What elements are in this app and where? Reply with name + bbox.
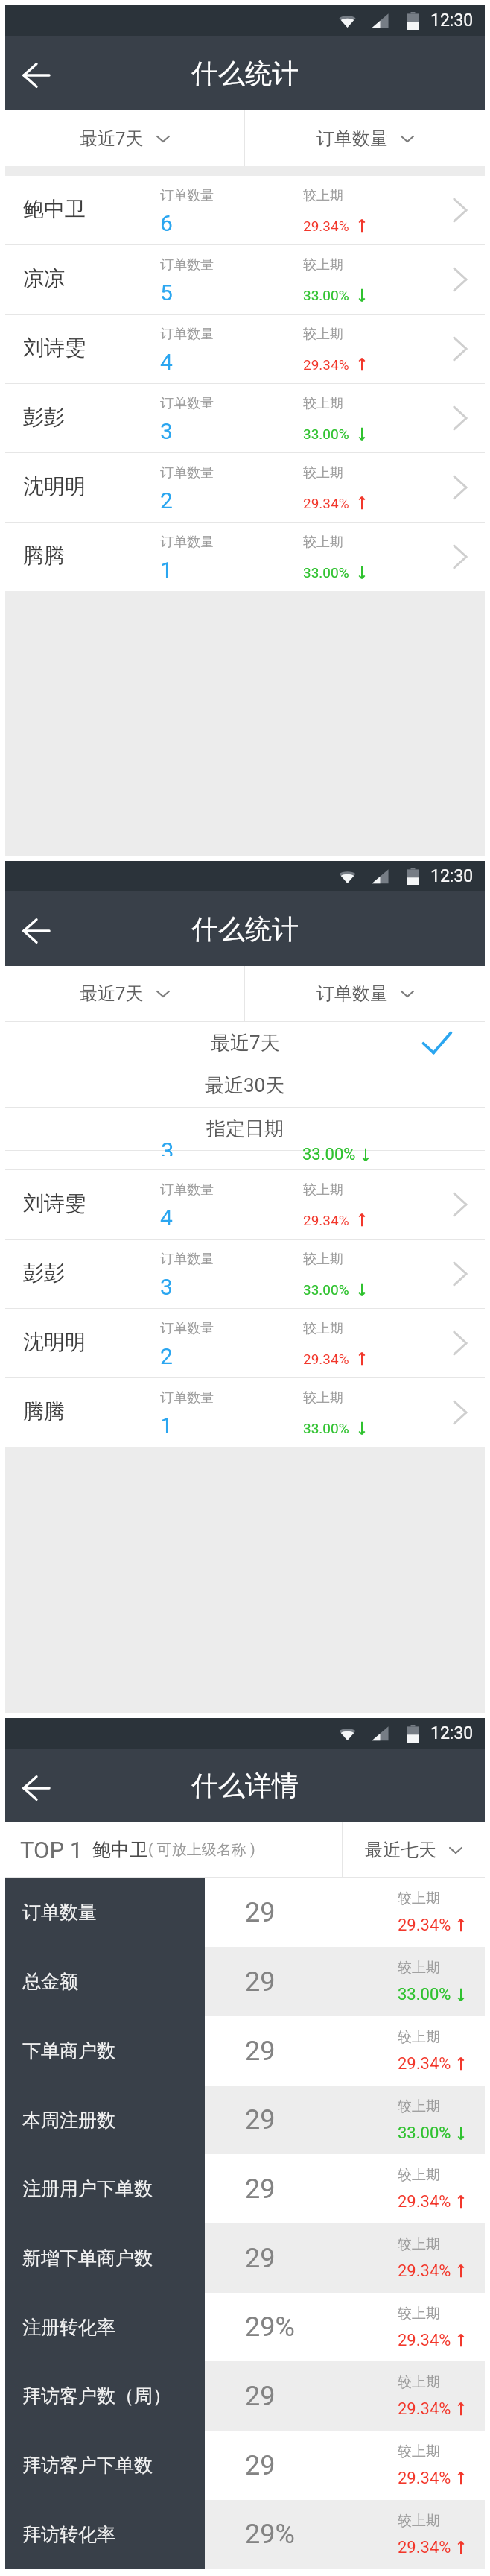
button[interactable]: 刘诗雯 (5, 1170, 485, 1239)
staticText: 12:30 (430, 866, 474, 886)
staticText: 33.00% (398, 1985, 451, 2004)
staticText: 较上期 (303, 256, 343, 274)
staticText: 较上期 (398, 2443, 440, 2460)
staticText: 12:30 (430, 1723, 474, 1743)
staticText: 29 (245, 2243, 276, 2274)
staticText: 33.00% (303, 287, 349, 303)
button[interactable]: 最近7天 (5, 1022, 485, 1064)
button[interactable]: 刘诗雯 (5, 315, 485, 383)
button[interactable]: 下单商户数 (5, 2016, 485, 2086)
button[interactable]: Back (22, 918, 51, 944)
staticText: 29.34% (398, 2261, 451, 2281)
button[interactable]: 指定日期 (5, 1108, 485, 1150)
staticText: 较上期 (303, 1389, 343, 1407)
button[interactable]: 订单数量 (5, 1878, 485, 1947)
staticText: 腾腾 (23, 1398, 65, 1424)
staticText: 29% (245, 2519, 295, 2550)
staticText: 29.34% (303, 495, 349, 511)
staticText: 3 (160, 418, 173, 444)
button[interactable]: 鲍中卫 (5, 176, 485, 244)
button[interactable]: 最近7天 (5, 966, 244, 1021)
staticText: 较上期 (303, 1181, 343, 1199)
button[interactable]: Back (22, 63, 51, 88)
button[interactable]: 拜访转化率 (5, 2500, 485, 2569)
staticText: 鲍中卫 (92, 1838, 148, 1861)
button[interactable]: 注册用户下单数 (5, 2154, 485, 2223)
button[interactable]: 最近7天 (5, 110, 244, 166)
button[interactable]: 凉凉 (5, 245, 485, 314)
staticText: 注册转化率 (22, 2316, 115, 2339)
button[interactable]: 新增下单商户数 (5, 2223, 485, 2293)
staticText: 彭彭 (23, 1260, 65, 1286)
staticText: 订单数量 (160, 1389, 214, 1407)
staticText: 最近7天 (80, 127, 144, 150)
staticText: 29.34% (398, 2399, 451, 2419)
staticText: 较上期 (398, 2166, 440, 2184)
staticText: 29.34% (303, 218, 349, 234)
staticText: 总金额 (22, 1970, 78, 1993)
staticText: 29.34% (303, 1212, 349, 1228)
staticText: 最近7天 (80, 982, 144, 1005)
staticText: 最近七天 (365, 1839, 436, 1861)
staticText: 6 (160, 210, 173, 236)
staticText: 较上期 (398, 2235, 440, 2253)
staticText: 拜访客户下单数 (22, 2454, 153, 2477)
staticText: 下单商户数 (22, 2039, 115, 2062)
staticText: 较上期 (398, 1890, 440, 1907)
staticText: 33.00% (398, 2124, 451, 2143)
button[interactable]: 彭彭 (5, 384, 485, 452)
staticText: 什么详情 (191, 1769, 299, 1802)
staticText: 较上期 (303, 395, 343, 412)
staticText: 什么统计 (191, 57, 299, 90)
staticText: 凉凉 (23, 265, 65, 291)
staticText: 4 (160, 1205, 173, 1231)
button[interactable]: 沈明明 (5, 453, 485, 522)
staticText: 29.34% (398, 2054, 451, 2074)
staticText: 较上期 (398, 2028, 440, 2046)
button[interactable]: 腾腾 (5, 1378, 485, 1447)
staticText: 订单数量 (160, 326, 214, 343)
button[interactable]: 注册转化率 (5, 2293, 485, 2361)
staticText: 29.34% (398, 2538, 451, 2557)
button[interactable]: 订单数量 (245, 966, 485, 1021)
button[interactable]: 订单数量 (245, 110, 485, 166)
staticText: 订单数量 (160, 1251, 214, 1268)
button[interactable]: 最近七天 (343, 1822, 485, 1877)
staticText: 什么统计 (191, 912, 299, 946)
button[interactable]: 最近30天 (5, 1064, 485, 1107)
staticText: 29 (245, 2450, 276, 2481)
staticText: 较上期 (303, 326, 343, 343)
staticText: 订单数量 (316, 127, 388, 150)
staticText: 较上期 (303, 464, 343, 482)
staticText: 订单数量 (316, 982, 388, 1005)
staticText: 29 (245, 1897, 276, 1928)
staticText: 29.34% (303, 1351, 349, 1367)
staticText: 29% (245, 2311, 295, 2343)
staticText: 订单数量 (160, 1181, 214, 1199)
staticText: 鲍中卫 (23, 196, 86, 222)
staticText: 29 (245, 2173, 276, 2205)
button[interactable]: Back (22, 1775, 51, 1801)
staticText: 3 (160, 1274, 173, 1300)
staticText: 29 (245, 2381, 276, 2412)
button[interactable]: 彭彭 (5, 1240, 485, 1308)
staticText: 腾腾 (23, 543, 65, 569)
button[interactable]: 本周注册数 (5, 2086, 485, 2154)
button[interactable]: 拜访客户下单数 (5, 2431, 485, 2500)
staticText: 沈明明 (23, 1329, 86, 1355)
staticText: 29.34% (303, 356, 349, 373)
staticText: 订单数量 (160, 464, 214, 482)
button[interactable]: 腾腾 (5, 523, 485, 591)
staticText: 29 (245, 2036, 276, 2067)
staticText: 29.34% (398, 2192, 451, 2212)
staticText: 较上期 (303, 187, 343, 204)
staticText: 订单数量 (160, 187, 214, 204)
button[interactable]: 拜访客户数（周） (5, 2361, 485, 2431)
button[interactable]: 总金额 (5, 1947, 485, 2016)
staticText: 33.00% (303, 1281, 349, 1298)
staticText: 4 (160, 349, 173, 375)
button[interactable]: 沈明明 (5, 1309, 485, 1377)
staticText: 订单数量 (160, 534, 214, 551)
staticText: 29.34% (398, 2331, 451, 2350)
button[interactable]: TOP 1 (20, 1822, 342, 1877)
